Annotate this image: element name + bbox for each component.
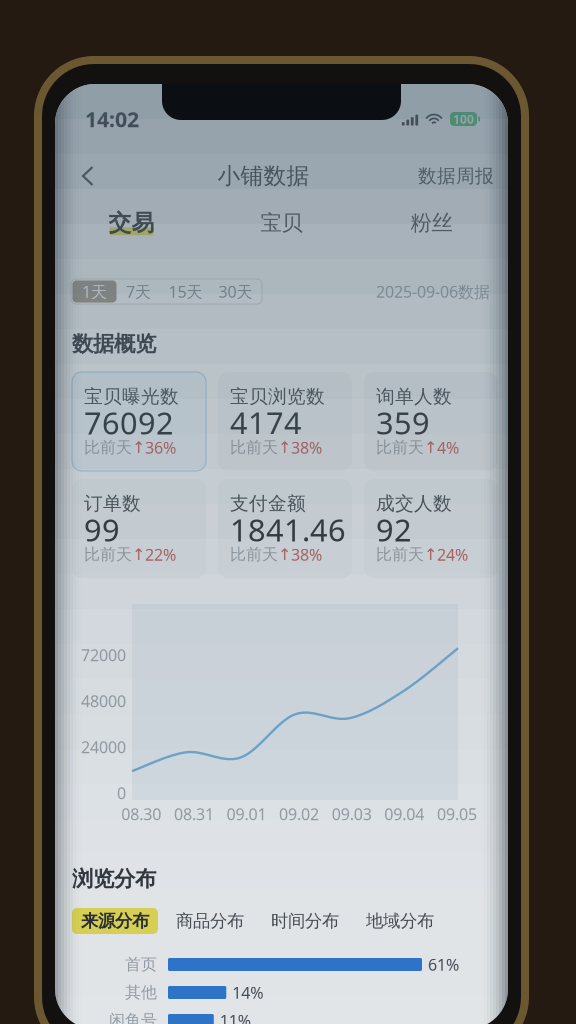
staticText: 24000 — [81, 736, 126, 758]
staticText: 小铺数据 — [217, 162, 309, 190]
staticText: 比前天 — [230, 544, 278, 565]
staticText: 时间分布 — [271, 910, 339, 932]
button[interactable]: 1天 — [72, 280, 116, 302]
staticText: 99 — [84, 509, 120, 550]
staticText: 11% — [220, 1010, 251, 1024]
staticText: 38% — [291, 437, 322, 458]
staticText: 成交人数 — [376, 492, 452, 515]
staticText: 92 — [376, 509, 412, 550]
button[interactable]: Back — [67, 154, 109, 198]
staticText: 交易 — [108, 209, 154, 237]
staticText: 08.31 — [174, 803, 214, 825]
staticText: 72000 — [81, 644, 126, 666]
staticText: 24% — [437, 544, 468, 565]
button[interactable]: 时间分布 — [262, 908, 348, 934]
button[interactable]: 数据周报 — [418, 154, 494, 198]
staticText: 比前天 — [84, 437, 132, 458]
staticText: ↑ — [132, 438, 145, 457]
staticText: 宝贝 — [260, 210, 302, 236]
button[interactable]: 商品分布 — [167, 908, 253, 934]
staticText: 4% — [437, 437, 459, 458]
button[interactable]: 询单人数 — [364, 372, 498, 471]
button[interactable]: 7天 — [116, 280, 160, 302]
staticText: 14:02 — [85, 104, 139, 134]
staticText: 09.01 — [226, 803, 266, 825]
button[interactable]: 宝贝曝光数 — [72, 372, 206, 471]
staticText: 首页 — [125, 954, 157, 975]
staticText: 比前天 — [376, 544, 424, 565]
button[interactable]: 地域分布 — [357, 908, 443, 934]
staticText: 2025-09-06数据 — [376, 281, 490, 302]
staticText: 浏览分布 — [72, 866, 156, 892]
button[interactable]: 宝贝 — [206, 203, 356, 243]
button[interactable]: 30天 — [210, 280, 260, 302]
staticText: 7天 — [126, 281, 151, 302]
staticText: 询单人数 — [376, 385, 452, 408]
staticText: 30天 — [218, 281, 252, 302]
staticText: 09.03 — [332, 803, 372, 825]
staticText: 闲鱼号 — [109, 1010, 157, 1024]
staticText: 支付金额 — [230, 492, 306, 515]
button[interactable]: 15天 — [160, 280, 210, 302]
staticText: 比前天 — [84, 544, 132, 565]
staticText: 宝贝曝光数 — [84, 385, 179, 408]
staticText: 数据概览 — [72, 331, 156, 357]
button[interactable]: 来源分布 — [72, 908, 158, 934]
staticText: 比前天 — [230, 437, 278, 458]
staticText: ↑ — [278, 545, 291, 564]
staticText: 36% — [145, 437, 176, 458]
staticText: 商品分布 — [176, 910, 244, 932]
staticText: ↑ — [424, 545, 437, 564]
staticText: 订单数 — [84, 492, 141, 515]
staticText: 09.04 — [384, 803, 424, 825]
staticText: 22% — [145, 544, 176, 565]
staticText: 09.05 — [437, 803, 477, 825]
staticText: 38% — [291, 544, 322, 565]
staticText: 粉丝 — [410, 210, 452, 236]
staticText: 4174 — [230, 402, 302, 443]
button[interactable]: 支付金额 — [218, 479, 352, 578]
button[interactable]: 订单数 — [72, 479, 206, 578]
staticText: ↑ — [424, 438, 437, 457]
staticText: 1天 — [82, 281, 107, 302]
staticText: 宝贝浏览数 — [230, 385, 325, 408]
button[interactable]: 交易 — [56, 203, 206, 243]
staticText: 数据周报 — [418, 164, 494, 188]
staticText: 14% — [232, 982, 263, 1003]
staticText: 地域分布 — [366, 910, 434, 932]
staticText: 61% — [428, 954, 459, 975]
staticText: 比前天 — [376, 437, 424, 458]
staticText: ↑ — [278, 438, 291, 457]
staticText: 100 — [453, 111, 474, 127]
staticText: 48000 — [81, 690, 126, 712]
staticText: 09.02 — [279, 803, 319, 825]
staticText: 1841.46 — [230, 509, 346, 550]
button[interactable]: 粉丝 — [356, 203, 506, 243]
staticText: 0 — [117, 782, 126, 804]
staticText: ↑ — [132, 545, 145, 564]
button[interactable]: 成交人数 — [364, 479, 498, 578]
staticText: 来源分布 — [81, 910, 149, 932]
staticText: 15天 — [168, 281, 202, 302]
button[interactable]: 宝贝浏览数 — [218, 372, 352, 471]
staticText: 其他 — [125, 982, 157, 1003]
staticText: 359 — [376, 402, 430, 443]
staticText: 08.30 — [121, 803, 161, 825]
staticText: 76092 — [84, 402, 174, 443]
